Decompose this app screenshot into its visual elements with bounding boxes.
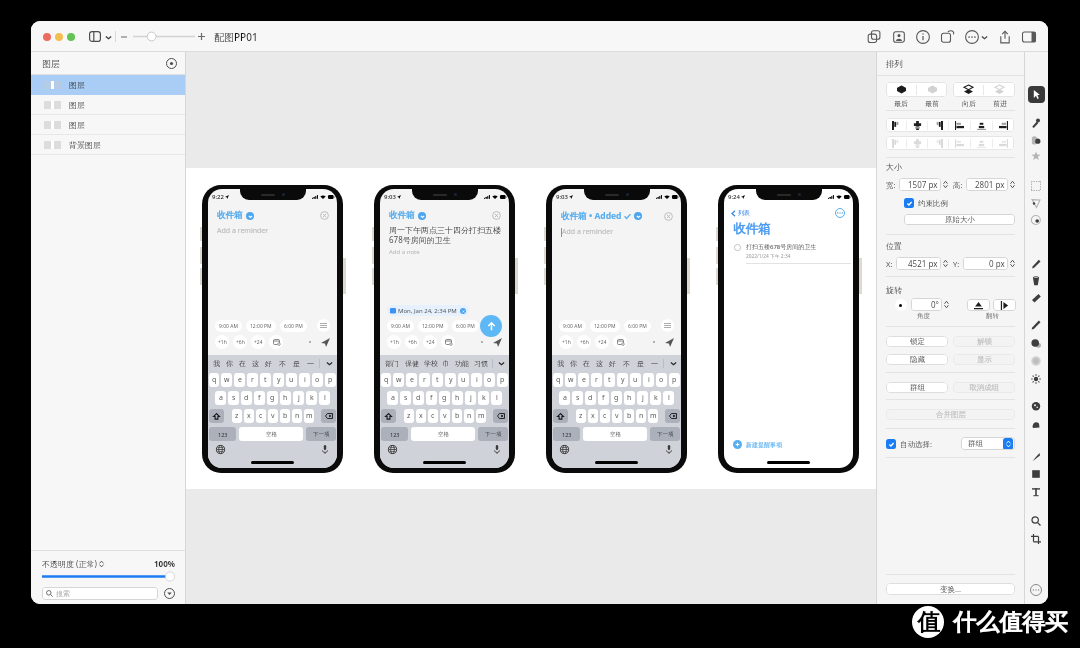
button[interactable]: h (624, 391, 635, 405)
button[interactable]: Shift (381, 409, 396, 423)
button[interactable]: 背景图层 (31, 135, 186, 155)
button[interactable]: 图层 (31, 115, 186, 135)
button[interactable]: Sun / dodge (1030, 373, 1042, 385)
button[interactable]: r (247, 373, 258, 387)
button[interactable]: f (426, 391, 437, 405)
button[interactable]: Window control (43, 33, 51, 41)
button[interactable]: More tools (1030, 584, 1042, 596)
button[interactable]: Add layer (166, 58, 177, 69)
button[interactable]: Switch keyboard (388, 445, 397, 454)
button[interactable]: p (325, 373, 336, 387)
button[interactable]: Window control (55, 33, 63, 41)
button[interactable]: Send (480, 315, 502, 337)
button[interactable]: y (445, 373, 456, 387)
button[interactable]: Dictate (494, 445, 500, 454)
button[interactable]: u (286, 373, 297, 387)
button[interactable]: Pick date (441, 335, 455, 349)
button[interactable]: Magic wand (1030, 117, 1042, 129)
button[interactable]: a (215, 391, 226, 405)
button[interactable]: Profile (892, 30, 906, 44)
button[interactable]: +6h (233, 335, 247, 349)
button[interactable]: Align option 4 (949, 118, 970, 132)
button[interactable]: y (617, 373, 628, 387)
button[interactable]: s (572, 391, 583, 405)
button[interactable]: 下一项 (478, 427, 508, 441)
button[interactable]: g (267, 391, 278, 405)
button[interactable]: Backspace (665, 409, 680, 423)
button[interactable]: Soft brush (1030, 355, 1042, 367)
button[interactable]: i (643, 373, 654, 387)
button[interactable]: s (400, 391, 411, 405)
button[interactable]: Paint brush (1030, 258, 1042, 270)
button[interactable]: Sidebar options (104, 33, 112, 41)
button[interactable]: x (588, 409, 598, 423)
button[interactable]: h (280, 391, 291, 405)
button[interactable]: Options (317, 319, 330, 332)
button[interactable]: Share (998, 30, 1012, 44)
button[interactable]: i (299, 373, 310, 387)
button[interactable]: c (600, 409, 610, 423)
button[interactable]: 12:00 PM (590, 320, 620, 332)
button[interactable]: Align option 2 (907, 118, 927, 132)
button[interactable]: Rotate (940, 29, 955, 44)
button[interactable]: Paint bucket (1030, 275, 1042, 287)
button[interactable]: q (381, 373, 391, 387)
button[interactable]: Toggle sidebar (89, 31, 101, 42)
button[interactable]: j (293, 391, 304, 405)
button[interactable]: Align option 3 (928, 136, 948, 150)
button[interactable]: 群组 (961, 437, 1015, 450)
button[interactable]: Window control (67, 33, 75, 41)
button[interactable]: f (598, 391, 609, 405)
button[interactable]: 解锁 (953, 336, 1015, 347)
button[interactable]: z (232, 409, 242, 423)
button[interactable]: 0° (911, 298, 942, 311)
button[interactable]: +1h (559, 335, 573, 349)
button[interactable]: v (268, 409, 278, 423)
button[interactable]: e (578, 373, 589, 387)
button[interactable]: Backspace (493, 409, 508, 423)
button[interactable]: Rotation dial (895, 299, 907, 311)
button[interactable]: q (209, 373, 219, 387)
button[interactable]: Align option 4 (949, 136, 970, 150)
button[interactable]: Align option 3 (928, 118, 948, 132)
button[interactable]: 图层 (31, 95, 186, 115)
button[interactable]: n (464, 409, 474, 423)
button[interactable]: 群组 (886, 382, 948, 393)
button[interactable]: u (458, 373, 469, 387)
button[interactable]: c (256, 409, 266, 423)
button[interactable]: Align option 5 (971, 136, 992, 150)
button[interactable]: b (452, 409, 462, 423)
button[interactable]: i (471, 373, 482, 387)
button[interactable]: a (559, 391, 570, 405)
button[interactable]: w (393, 373, 404, 387)
button[interactable]: Mon, Jan 24, 2:34 PM (387, 305, 469, 316)
button[interactable]: m (304, 409, 314, 423)
button[interactable]: e (234, 373, 245, 387)
button[interactable]: Star (1030, 150, 1042, 162)
button[interactable]: +24 (595, 335, 609, 349)
button[interactable]: 锁定 (886, 336, 948, 347)
button[interactable]: g (439, 391, 450, 405)
button[interactable]: More options (835, 208, 845, 218)
button[interactable]: 取消成组 (953, 382, 1015, 393)
button[interactable]: 9:00 AM (215, 320, 242, 332)
button[interactable]: 空格 (411, 427, 475, 441)
button[interactable]: g (611, 391, 622, 405)
button[interactable]: +6h (405, 335, 419, 349)
button[interactable]: p (497, 373, 508, 387)
button[interactable]: 1507 px (899, 178, 941, 191)
button[interactable]: 变换... (886, 583, 1015, 595)
button[interactable]: Pencil (1030, 319, 1042, 331)
button[interactable]: Pen (1030, 451, 1042, 463)
button[interactable]: 6:00 PM (280, 320, 307, 332)
button[interactable]: o (656, 373, 667, 387)
button[interactable]: Align option 6 (993, 136, 1014, 150)
button[interactable]: l (663, 391, 674, 405)
button[interactable]: Rectangle (1030, 468, 1042, 480)
button[interactable]: b (280, 409, 290, 423)
button[interactable]: d (585, 391, 596, 405)
button[interactable]: Hide suggestions (497, 359, 505, 367)
button[interactable]: +24 (423, 335, 437, 349)
button[interactable]: 空格 (239, 427, 303, 441)
button[interactable]: Align option 5 (971, 118, 992, 132)
